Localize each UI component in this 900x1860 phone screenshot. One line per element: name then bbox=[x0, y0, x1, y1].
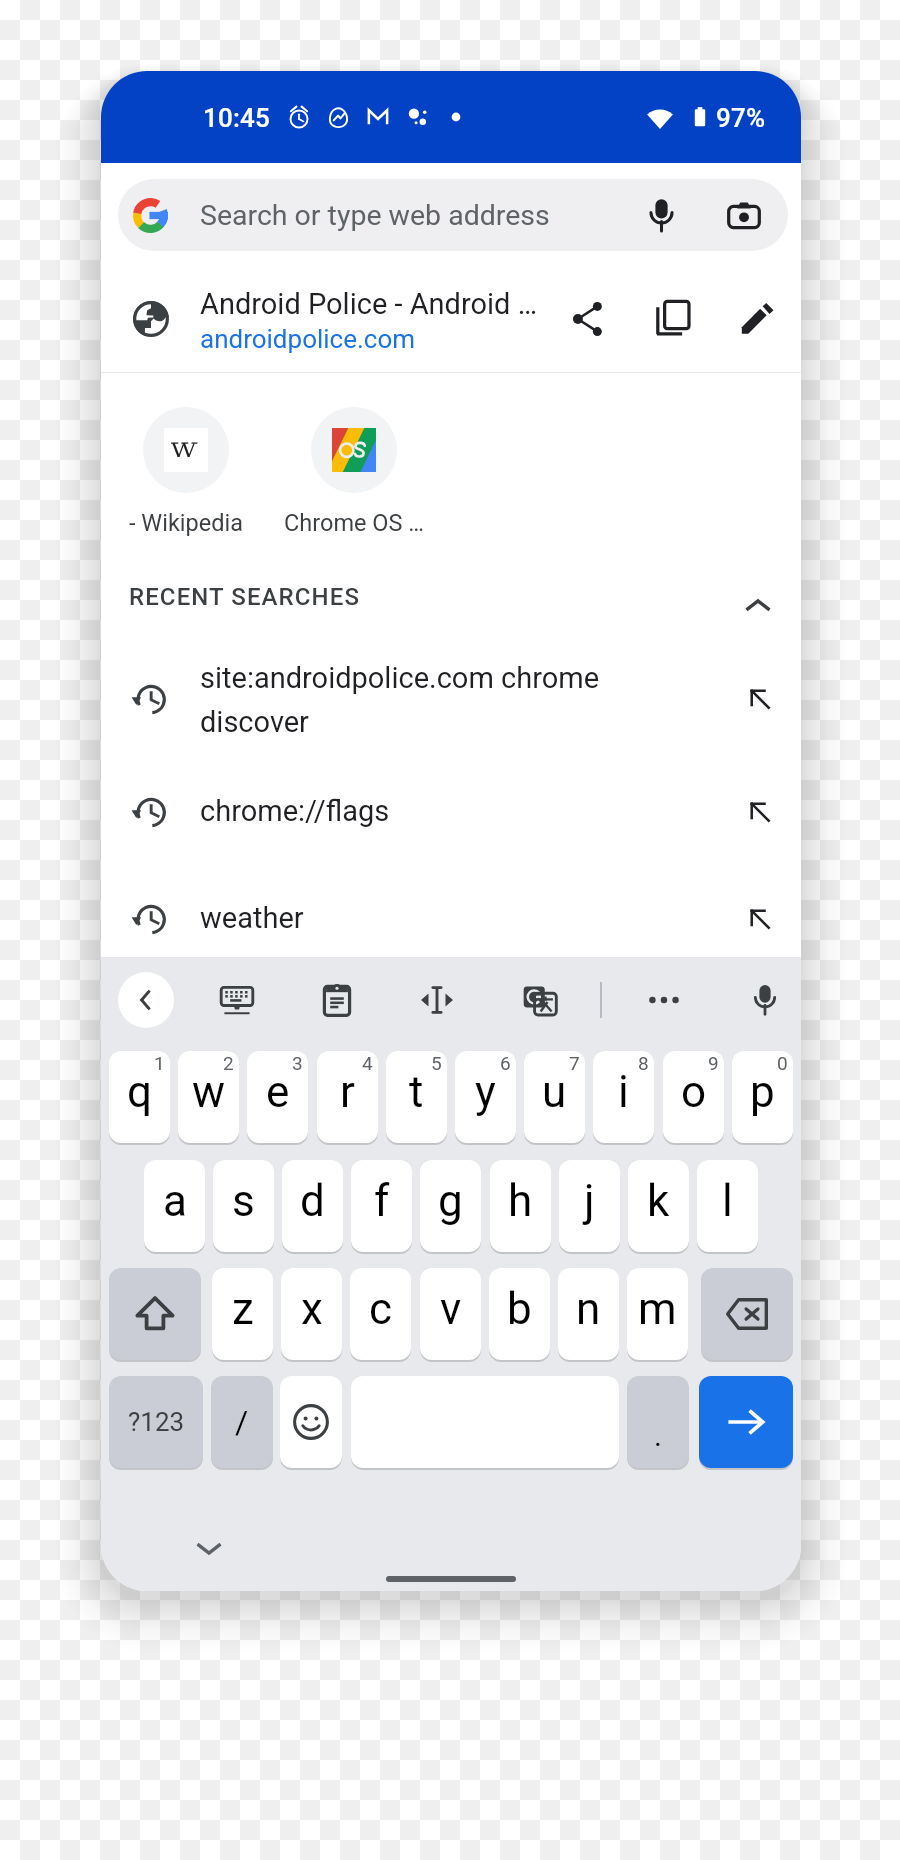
button[interactable]: Clipboard bbox=[304, 967, 370, 1033]
button[interactable] bbox=[101, 758, 801, 866]
staticText: g bbox=[438, 1175, 463, 1227]
button[interactable]: u bbox=[524, 1051, 585, 1143]
button[interactable]: b bbox=[489, 1268, 550, 1360]
button[interactable]: RECENT SEARCHES bbox=[101, 565, 801, 641]
button[interactable]: ?123 bbox=[109, 1376, 203, 1468]
button[interactable]: Chrome OS … bbox=[264, 407, 444, 537]
button[interactable] bbox=[118, 179, 788, 251]
staticText: e bbox=[266, 1066, 290, 1118]
staticText: 4 bbox=[362, 1052, 373, 1074]
button[interactable]: z bbox=[212, 1268, 273, 1360]
staticText: 10:45 bbox=[203, 103, 270, 133]
button[interactable]: Enter bbox=[699, 1376, 793, 1468]
staticText: . bbox=[654, 1418, 662, 1453]
button[interactable]: i bbox=[593, 1051, 654, 1143]
button[interactable]: m bbox=[627, 1268, 688, 1360]
staticText: r bbox=[340, 1066, 355, 1118]
button[interactable]: y bbox=[455, 1051, 516, 1143]
staticText: Search or type web address bbox=[200, 199, 550, 232]
button[interactable]: Share bbox=[556, 287, 620, 351]
staticText: q bbox=[127, 1066, 153, 1118]
staticText: d bbox=[300, 1175, 325, 1227]
staticText: k bbox=[647, 1175, 670, 1227]
staticText: weather bbox=[200, 901, 304, 935]
staticText: z bbox=[232, 1283, 254, 1335]
other: Emoji bbox=[293, 1404, 329, 1440]
staticText: Chrome OS … bbox=[284, 509, 424, 537]
staticText: f bbox=[374, 1175, 390, 1227]
button[interactable]: q bbox=[109, 1051, 170, 1143]
button[interactable]: n bbox=[558, 1268, 619, 1360]
staticText: c bbox=[369, 1283, 393, 1335]
button[interactable]: Keyboard settings bbox=[204, 967, 270, 1033]
staticText: t bbox=[409, 1066, 424, 1118]
button[interactable]: x bbox=[281, 1268, 342, 1360]
staticText: Android Police - Android … bbox=[200, 287, 538, 321]
button[interactable]: t bbox=[386, 1051, 447, 1143]
other: Enter bbox=[724, 1400, 768, 1444]
button[interactable]: Back bbox=[118, 972, 174, 1028]
staticText: 2 bbox=[223, 1052, 234, 1074]
button[interactable]: v bbox=[420, 1268, 481, 1360]
button[interactable]: Emoji bbox=[280, 1376, 342, 1468]
button[interactable]: g bbox=[420, 1160, 481, 1252]
button[interactable] bbox=[101, 265, 801, 372]
button[interactable]: d bbox=[282, 1160, 343, 1252]
button[interactable]: e bbox=[247, 1051, 308, 1143]
button[interactable]: r bbox=[317, 1051, 378, 1143]
button[interactable]: Voice search bbox=[629, 183, 694, 248]
button[interactable]: / bbox=[211, 1376, 273, 1468]
staticText: androidpolice.com bbox=[200, 324, 416, 354]
button[interactable]: Use this suggestion bbox=[734, 786, 786, 838]
staticText: ?123 bbox=[128, 1407, 185, 1437]
staticText: site:androidpolice.com chrome discover bbox=[200, 661, 600, 739]
staticText: 8 bbox=[638, 1052, 649, 1074]
button[interactable]: Use this suggestion bbox=[734, 893, 786, 945]
staticText: l bbox=[722, 1175, 733, 1227]
other: Backspace bbox=[726, 1293, 768, 1335]
button[interactable]: s bbox=[213, 1160, 274, 1252]
button[interactable]: . bbox=[627, 1376, 689, 1468]
button[interactable]: Voice input bbox=[732, 967, 798, 1033]
staticText: v bbox=[440, 1283, 462, 1335]
staticText: 1 bbox=[154, 1052, 165, 1074]
button[interactable]: Search with camera bbox=[713, 185, 775, 247]
button[interactable]: Backspace bbox=[701, 1268, 793, 1360]
staticText: 7 bbox=[569, 1052, 580, 1074]
staticText: 5 bbox=[431, 1052, 442, 1074]
button[interactable]: a bbox=[144, 1160, 205, 1252]
button[interactable]: - Wikipedia bbox=[101, 407, 276, 537]
staticText: u bbox=[542, 1066, 567, 1118]
button[interactable]: c bbox=[350, 1268, 411, 1360]
button[interactable]: Use this suggestion bbox=[734, 673, 786, 725]
staticText: b bbox=[507, 1283, 532, 1335]
button[interactable]: j bbox=[559, 1160, 620, 1252]
button[interactable]: l bbox=[697, 1160, 758, 1252]
staticText: 0 bbox=[777, 1052, 788, 1074]
button[interactable]: More options bbox=[631, 967, 697, 1033]
button[interactable]: Copy link bbox=[640, 285, 706, 351]
staticText: RECENT SEARCHES bbox=[129, 583, 361, 611]
button[interactable]: Hide keyboard bbox=[179, 1518, 239, 1578]
staticText: j bbox=[584, 1175, 595, 1227]
staticText: w bbox=[192, 1066, 226, 1118]
button[interactable]: Translate bbox=[507, 967, 573, 1033]
staticText: a bbox=[163, 1175, 187, 1227]
staticText: s bbox=[232, 1175, 255, 1227]
button[interactable]: h bbox=[490, 1160, 551, 1252]
button[interactable]: Edit query bbox=[726, 288, 790, 352]
button[interactable]: o bbox=[663, 1051, 724, 1143]
staticText: p bbox=[750, 1066, 775, 1118]
button[interactable]: Shift bbox=[109, 1268, 201, 1360]
staticText: m bbox=[638, 1283, 677, 1335]
staticText: / bbox=[235, 1403, 249, 1441]
button[interactable]: w bbox=[178, 1051, 239, 1143]
button[interactable]: f bbox=[351, 1160, 412, 1252]
button[interactable]: p bbox=[732, 1051, 793, 1143]
button[interactable]: Text editing bbox=[404, 967, 470, 1033]
button[interactable] bbox=[101, 865, 801, 973]
other: Shift bbox=[134, 1293, 176, 1335]
button[interactable] bbox=[101, 645, 801, 753]
button[interactable]: k bbox=[628, 1160, 689, 1252]
